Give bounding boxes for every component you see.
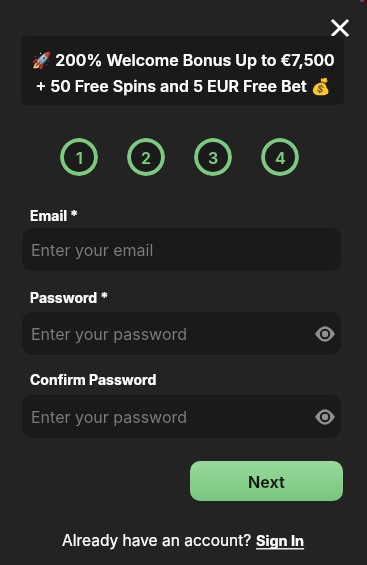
staticText: Password * bbox=[30, 289, 109, 306]
staticText: 2 bbox=[141, 148, 151, 167]
button[interactable] bbox=[326, 14, 354, 42]
staticText: 3 bbox=[208, 148, 219, 167]
staticText: 4 bbox=[275, 148, 286, 167]
button[interactable]: Enter your email bbox=[22, 228, 341, 271]
button[interactable]: Enter your password bbox=[22, 395, 341, 438]
staticText: Next bbox=[248, 472, 285, 491]
button[interactable]: Enter your password bbox=[22, 312, 341, 355]
staticText: Enter your password bbox=[31, 324, 188, 343]
staticText: Already have an account? bbox=[62, 531, 256, 550]
button[interactable]: Next bbox=[190, 461, 343, 501]
staticText: Email * bbox=[30, 207, 79, 224]
staticText: 1 bbox=[76, 148, 83, 167]
staticText: 🚀 200% Welcome Bonus Up to €7,500 + 50 F… bbox=[31, 50, 335, 96]
staticText: Enter your email bbox=[31, 240, 154, 259]
staticText: Confirm Password bbox=[30, 371, 157, 388]
staticText: Enter your password bbox=[31, 407, 188, 426]
button[interactable]: Sign In bbox=[256, 532, 305, 550]
